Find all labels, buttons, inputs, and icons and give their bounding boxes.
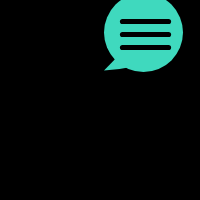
- button[interactable]: Messages: [0, 0, 200, 200]
